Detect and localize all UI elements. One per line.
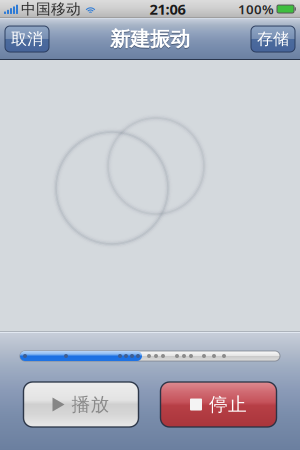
button[interactable]: 存储 <box>251 26 295 52</box>
staticText: 100% <box>238 0 274 18</box>
staticText: 取消 <box>11 29 43 49</box>
staticText: 中国移动 <box>21 0 81 18</box>
staticText: 存储 <box>257 29 289 49</box>
button[interactable]: 停止 <box>160 382 276 427</box>
staticText: 21:06 <box>149 0 185 19</box>
staticText: 新建振动 <box>110 28 190 52</box>
button[interactable]: 取消 <box>5 26 49 52</box>
staticText: 播放 <box>71 393 109 416</box>
staticText: 新建振动 <box>110 27 190 51</box>
staticText: 停止 <box>209 393 247 416</box>
button[interactable]: 播放 <box>23 382 138 427</box>
